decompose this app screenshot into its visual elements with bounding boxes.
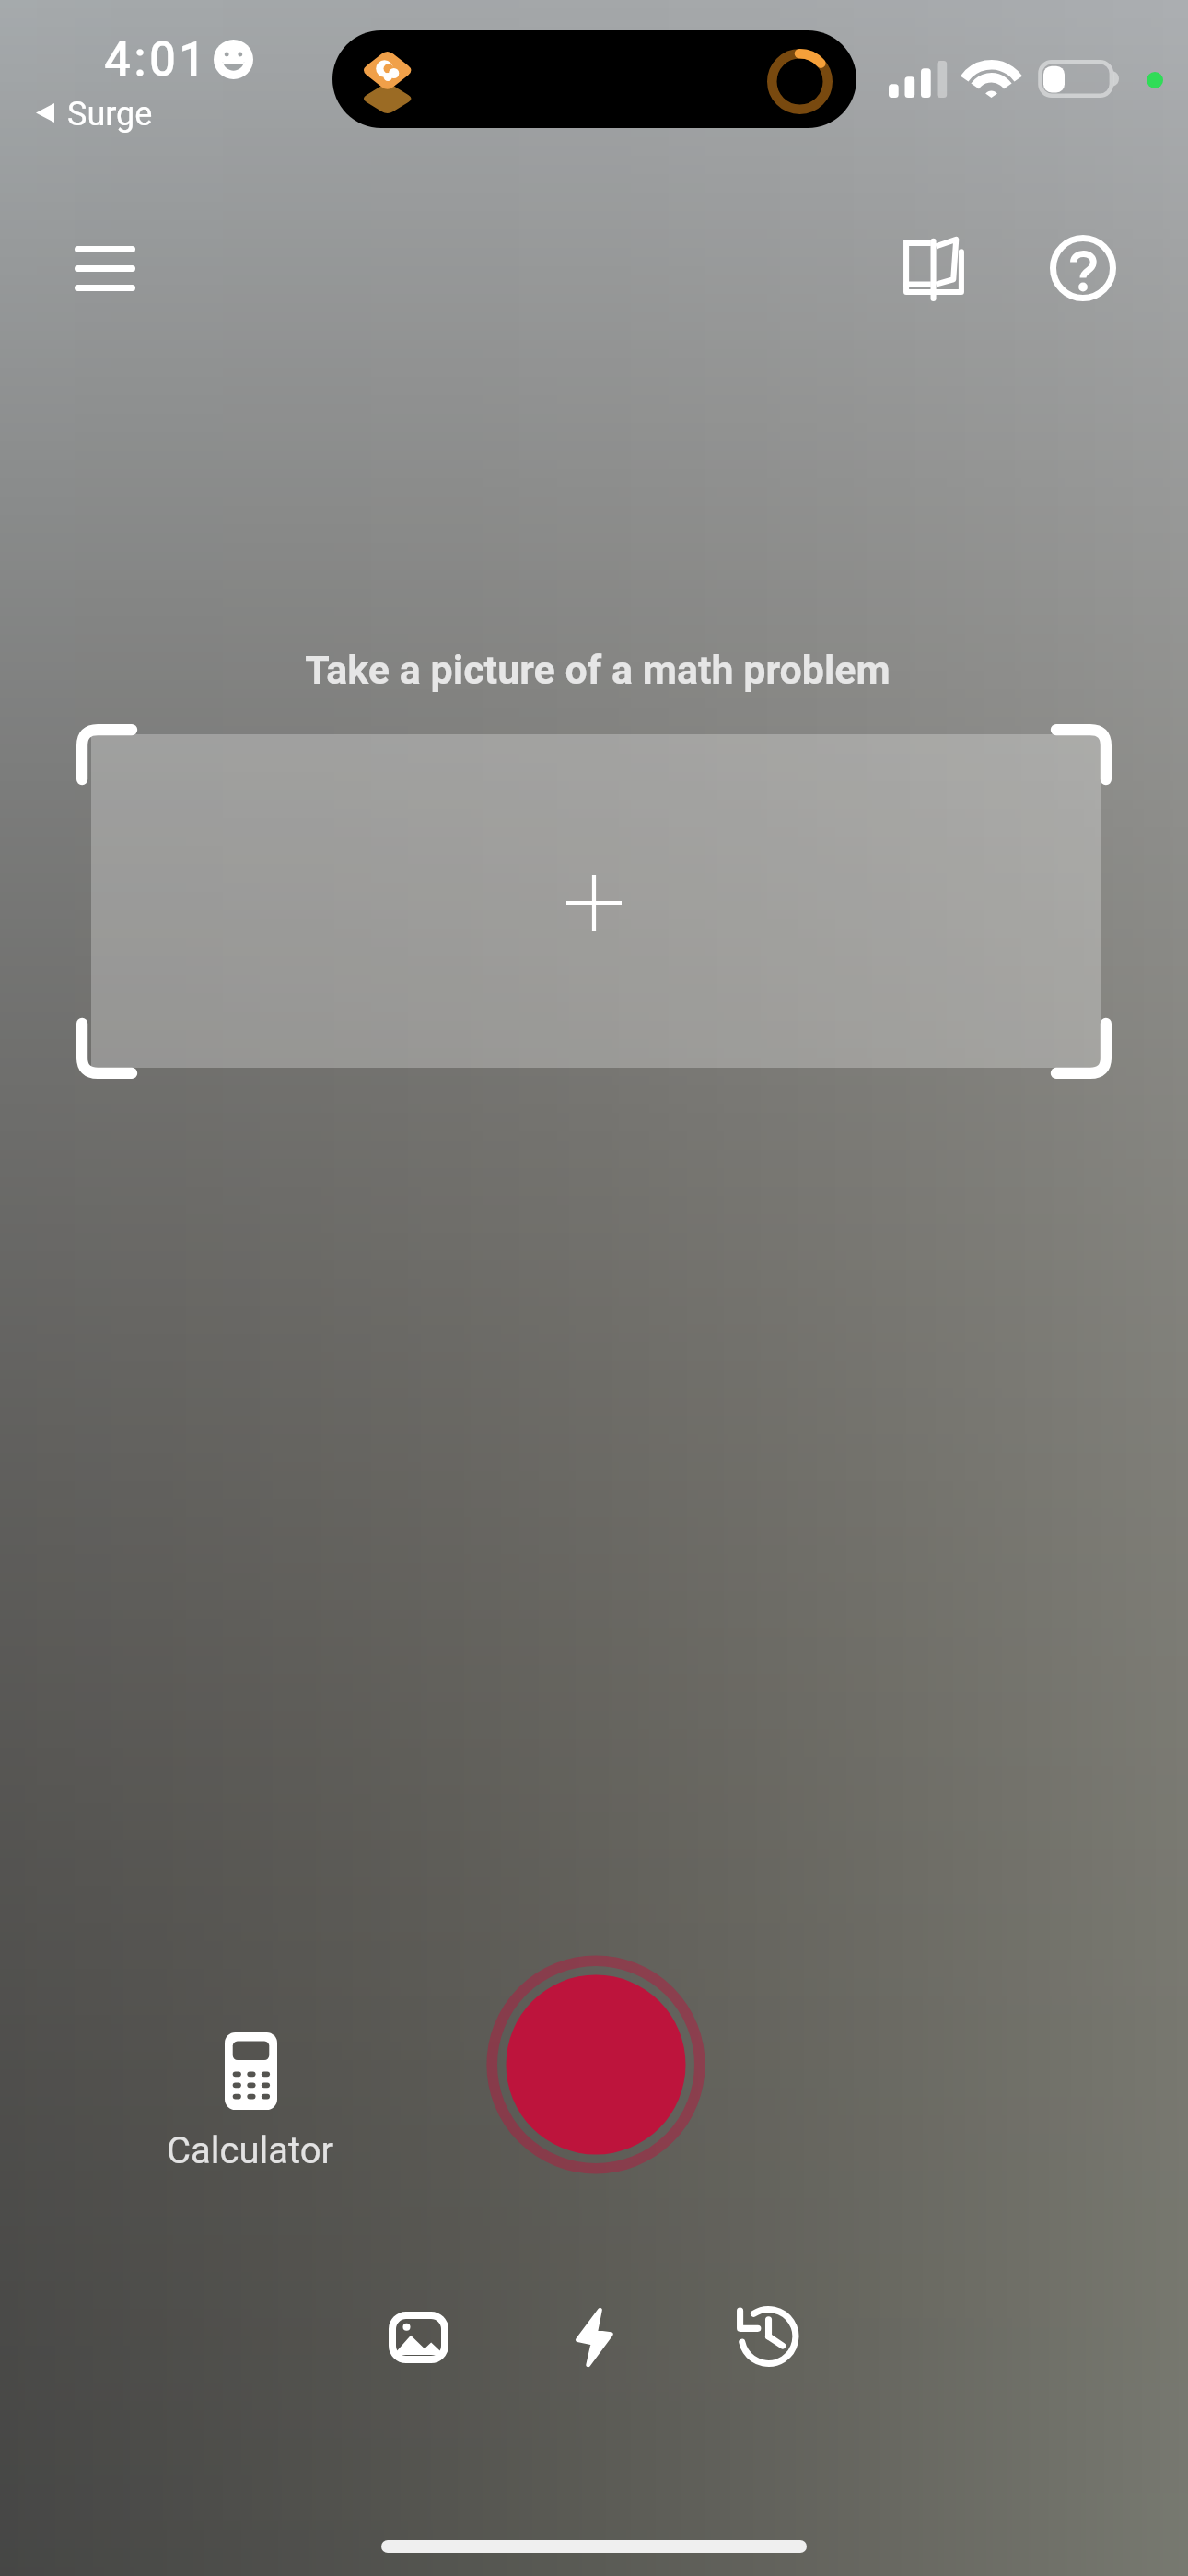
button[interactable]: Help	[1027, 212, 1139, 324]
button[interactable]: Take picture	[486, 1955, 705, 2174]
staticText: 4:01	[104, 32, 209, 88]
button[interactable]: Scan area	[91, 734, 1101, 1068]
button[interactable]: Calculator	[140, 2032, 361, 2172]
button[interactable]: Flash	[539, 2282, 649, 2393]
staticText: Calculator	[167, 2129, 334, 2172]
staticText: Surge	[67, 95, 153, 134]
button[interactable]: Textbooks	[878, 212, 990, 324]
button[interactable]: History	[712, 2282, 822, 2393]
button[interactable]: Menu	[49, 212, 161, 324]
staticText: Take a picture of a math problem	[4, 647, 1188, 693]
button[interactable]: Gallery	[363, 2282, 473, 2393]
